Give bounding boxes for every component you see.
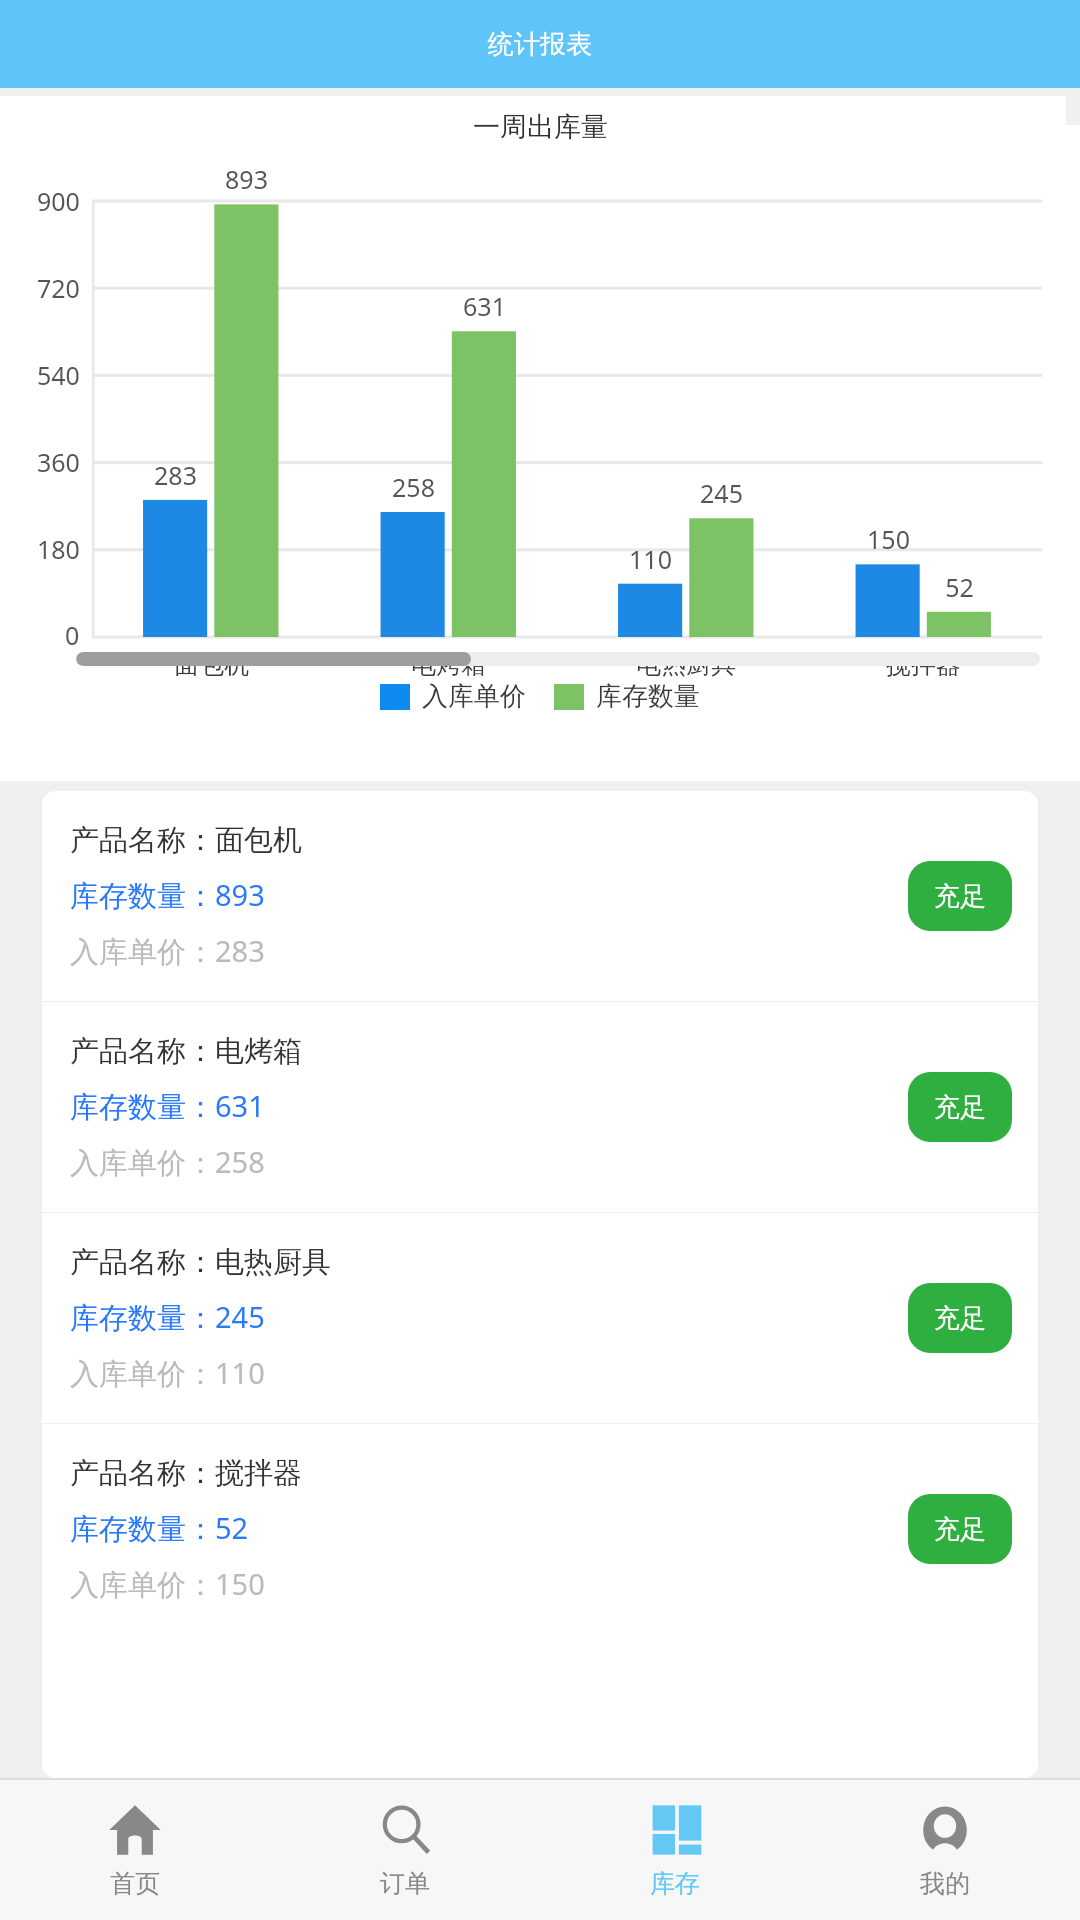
staticText: 入库单价 — [422, 680, 526, 713]
staticText: 258 — [392, 470, 435, 504]
button[interactable]: 产品名称：电热厨具 — [42, 1213, 1038, 1423]
staticText: 首页 — [110, 1868, 160, 1899]
staticText: 电热厨具 — [636, 649, 736, 680]
button[interactable]: 订单 — [270, 1780, 540, 1920]
staticText: 900 — [37, 184, 80, 218]
staticText: 充足 — [934, 1513, 986, 1546]
button[interactable]: 我的 — [810, 1780, 1080, 1920]
staticText: 540 — [37, 358, 80, 392]
staticText: 库存数量 — [596, 680, 700, 713]
button[interactable]: 产品名称：电烤箱 — [42, 1002, 1038, 1212]
staticText: 入库单价：283 — [70, 931, 265, 971]
staticText: 充足 — [934, 880, 986, 913]
button[interactable]: 库存 — [540, 1780, 810, 1920]
staticText: 库存数量：52 — [70, 1508, 249, 1548]
staticText: 库存数量：245 — [70, 1297, 265, 1337]
staticText: 库存 — [650, 1868, 700, 1899]
staticText: 283 — [154, 458, 197, 492]
staticText: 搅拌器 — [886, 649, 961, 680]
staticText: 我的 — [920, 1868, 970, 1899]
staticText: 产品名称：搅拌器 — [70, 1455, 302, 1492]
staticText: 720 — [37, 271, 80, 305]
staticText: 面包机 — [174, 649, 249, 680]
button[interactable]: 首页 — [0, 1780, 270, 1920]
staticText: 统计报表 — [488, 28, 592, 61]
staticText: 245 — [700, 476, 743, 510]
staticText: 一周出库量 — [473, 110, 608, 144]
staticText: 库存数量：631 — [70, 1086, 265, 1126]
staticText: 110 — [629, 542, 672, 576]
button[interactable]: 产品名称：搅拌器 — [42, 1424, 1038, 1634]
staticText: 631 — [463, 289, 506, 323]
staticText: 充足 — [934, 1091, 986, 1124]
staticText: 180 — [37, 532, 80, 566]
staticText: 入库单价：258 — [70, 1142, 265, 1182]
staticText: 充足 — [934, 1302, 986, 1335]
staticText: 52 — [945, 570, 974, 604]
staticText: 产品名称：电热厨具 — [70, 1244, 331, 1281]
staticText: 产品名称：电烤箱 — [70, 1033, 302, 1070]
staticText: 产品名称：面包机 — [70, 822, 302, 859]
staticText: 150 — [867, 522, 910, 556]
button[interactable]: 产品名称：面包机 — [42, 791, 1038, 1001]
staticText: 893 — [225, 162, 268, 196]
staticText: 入库单价：110 — [70, 1353, 265, 1393]
staticText: 电烤箱 — [411, 649, 486, 680]
staticText: 库存数量：893 — [70, 875, 265, 915]
staticText: 0 — [65, 618, 80, 648]
staticText: 360 — [37, 445, 80, 479]
staticText: 订单 — [380, 1868, 430, 1899]
staticText: 入库单价：150 — [70, 1564, 265, 1604]
